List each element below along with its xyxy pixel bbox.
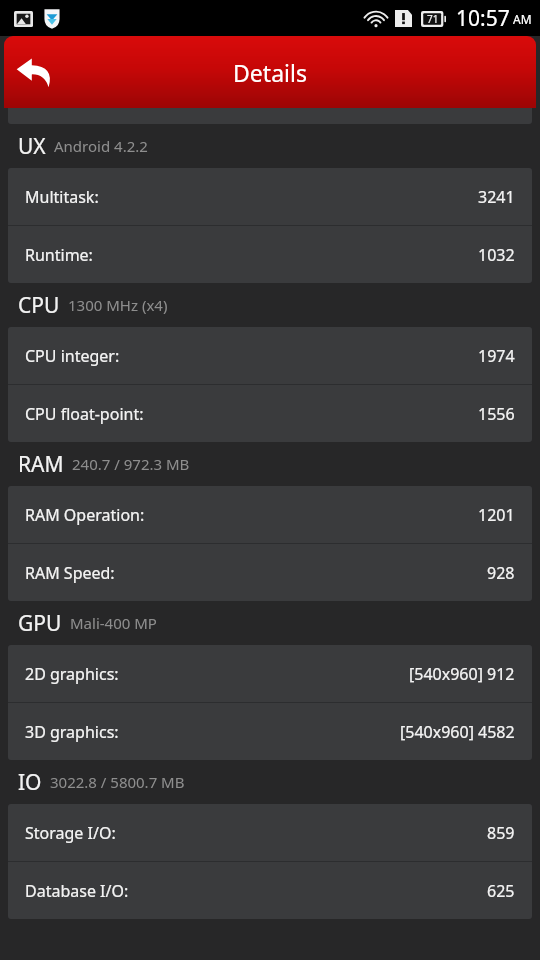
staticText: [540x960] 4582	[400, 721, 515, 743]
button[interactable]: CPU integer:	[8, 327, 532, 384]
staticText: 859	[487, 822, 515, 844]
staticText: Runtime:	[25, 244, 93, 266]
staticText: 1201	[478, 504, 515, 526]
staticText: AM	[513, 11, 532, 27]
staticText: 1974	[478, 345, 515, 367]
button[interactable]: Database I/O:	[8, 862, 532, 919]
staticText: 928	[487, 562, 515, 584]
button[interactable]: Runtime:	[8, 226, 532, 283]
button[interactable]: Storage I/O:	[8, 804, 532, 861]
button[interactable]: 2D graphics:	[8, 645, 532, 702]
staticText: 1556	[478, 403, 515, 425]
staticText: 2D graphics:	[25, 663, 119, 685]
staticText: 3D graphics:	[25, 721, 119, 743]
button[interactable]: RAM Speed:	[8, 544, 532, 601]
button[interactable]: RAM Operation:	[8, 486, 532, 543]
staticText: Mali-400 MP	[70, 613, 157, 633]
staticText: RAM Speed:	[25, 562, 115, 584]
staticText: CPU	[18, 291, 60, 320]
staticText: Multitask:	[25, 186, 99, 208]
staticText: 10:57	[456, 4, 510, 33]
staticText: Details	[233, 57, 307, 88]
staticText: Storage I/O:	[25, 822, 116, 844]
staticText: RAM	[18, 450, 64, 479]
button[interactable]: Back	[4, 36, 68, 108]
staticText: 625	[487, 880, 515, 902]
staticText: 3022.8 / 5800.7 MB	[50, 772, 185, 792]
staticText: IO	[18, 768, 42, 797]
staticText: CPU float-point:	[25, 403, 144, 425]
staticText: 71	[427, 12, 439, 26]
staticText: 1032	[478, 244, 515, 266]
staticText: CPU integer:	[25, 345, 120, 367]
staticText: Android 4.2.2	[54, 136, 148, 156]
button[interactable]: CPU float-point:	[8, 385, 532, 442]
staticText: GPU	[18, 609, 62, 638]
staticText: RAM Operation:	[25, 504, 145, 526]
staticText: 3241	[478, 186, 515, 208]
staticText: 1300 MHz (x4)	[68, 295, 168, 315]
staticText: Database I/O:	[25, 880, 129, 902]
staticText: [540x960] 912	[409, 663, 515, 685]
staticText: UX	[18, 132, 46, 161]
staticText: 240.7 / 972.3 MB	[72, 454, 190, 474]
button[interactable]: 3D graphics:	[8, 703, 532, 760]
button[interactable]: Multitask:	[8, 168, 532, 225]
